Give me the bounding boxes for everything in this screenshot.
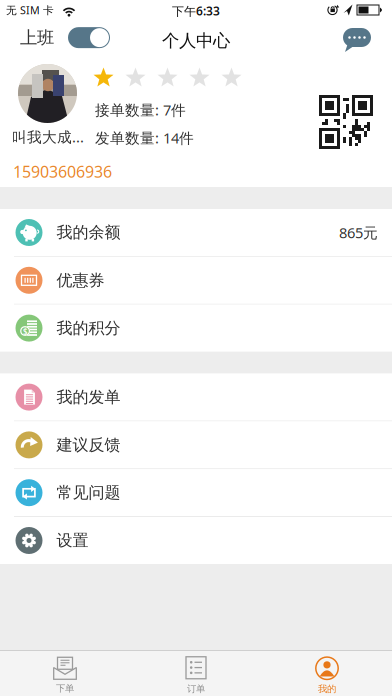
button[interactable]: $ [0,305,392,352]
button[interactable]: 上班切换 [0,20,90,41]
staticText: 个人中心 [162,30,230,51]
button[interactable]: 设置 [0,517,392,564]
button[interactable]: 常见问题 [0,469,392,516]
staticText: 865元 [339,223,378,242]
staticText: 优惠券 [56,270,104,290]
staticText: 设置 [56,531,88,550]
staticText: $ [23,326,28,337]
button[interactable]: 消息 [0,20,28,44]
staticText: 我的余额 [56,223,120,242]
staticText: 无 SIM 卡 [6,3,54,17]
staticText: 下单 [56,683,74,694]
button[interactable]: 订单 [131,653,261,696]
button[interactable]: 头像 [0,57,59,116]
staticText: 叫我大成... [12,127,84,146]
button[interactable]: 二维码 [0,57,55,112]
button[interactable]: 我的发单 [0,374,392,421]
staticText: 订单 [187,683,205,695]
button[interactable]: 建议反馈 [0,421,392,468]
staticText: 发单数量: 14件 [95,128,194,147]
staticText: 下午6:33 [172,3,220,19]
staticText: 我的发单 [56,387,120,407]
button[interactable]: 我的余额 [0,209,392,256]
staticText: 建议反馈 [56,435,120,455]
staticText: 15903606936 [13,161,112,182]
staticText: 接单数量: 7件 [95,100,186,119]
staticText: 常见问题 [56,483,120,503]
button[interactable]: 15903606936 [0,57,99,78]
staticText: 我的积分 [56,318,120,338]
staticText: 上班 [20,27,54,48]
button[interactable]: 下单 [0,653,130,696]
button[interactable]: 优惠券 [0,257,392,304]
staticText: 我的 [318,683,336,695]
button[interactable]: 我的 [262,653,392,696]
